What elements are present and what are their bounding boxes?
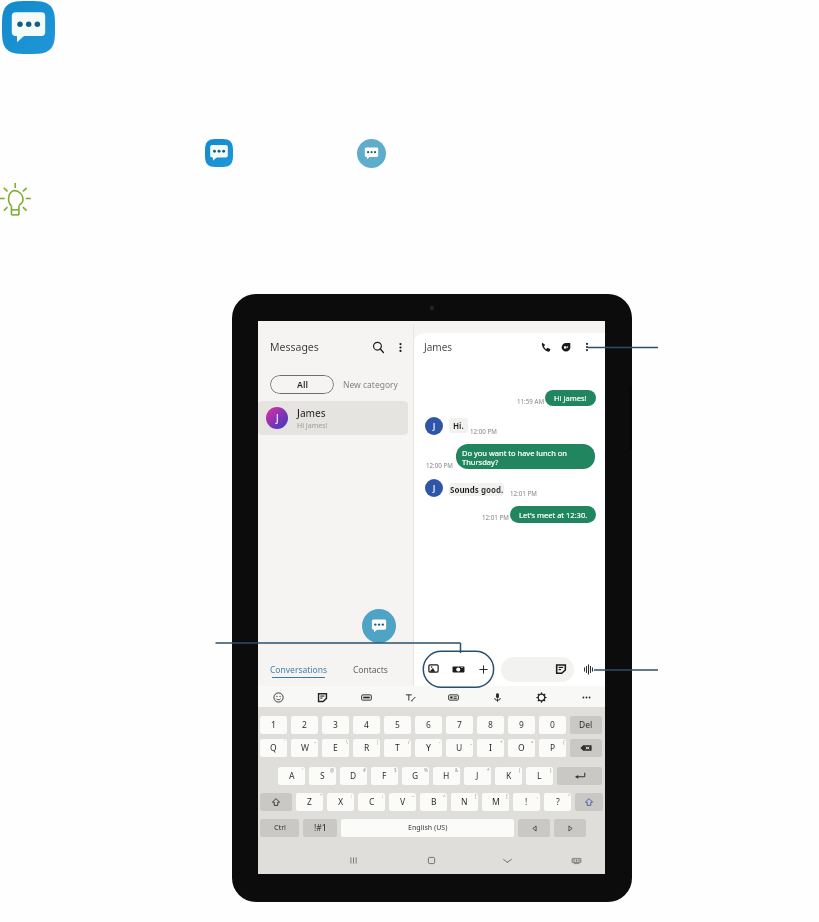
staticText: V: [400, 796, 406, 808]
button[interactable]: down: [496, 849, 518, 871]
button[interactable]: Add: [478, 664, 489, 675]
staticText: 3: [333, 719, 338, 731]
button[interactable]: !#1: [303, 819, 337, 837]
button[interactable]: More options: [581, 341, 593, 353]
button[interactable]: Contacts: [350, 664, 390, 682]
button[interactable]: J: [464, 767, 491, 785]
button[interactable]: 5: [384, 716, 411, 734]
button[interactable]: Z: [296, 793, 323, 811]
button[interactable]: 2: [291, 716, 318, 734]
button[interactable]: 3: [322, 716, 349, 734]
button[interactable]: N: [451, 793, 478, 811]
staticText: %: [424, 767, 428, 773]
button[interactable]: Voice input: [583, 664, 594, 675]
button[interactable]: Camera: [452, 663, 465, 676]
button[interactable]: M: [482, 793, 509, 811]
button[interactable]: Del: [570, 716, 602, 734]
button[interactable]: Ctrl: [260, 819, 299, 837]
button[interactable]: gif: [355, 691, 377, 703]
button[interactable]: New conversation: [362, 609, 396, 643]
button[interactable]: P: [539, 739, 566, 757]
staticText: #: [363, 767, 366, 773]
button[interactable]: 8: [477, 716, 504, 734]
button[interactable]: !: [513, 793, 540, 811]
button[interactable]: T: [384, 739, 411, 757]
staticText: Del: [579, 719, 593, 731]
button[interactable]: English (US): [341, 819, 514, 837]
button[interactable]: O: [508, 739, 535, 757]
button[interactable]: I: [477, 739, 504, 757]
button[interactable]: mic: [486, 691, 508, 703]
button[interactable]: clip: [442, 691, 464, 703]
button[interactable]: V: [389, 793, 416, 811]
button[interactable]: A: [278, 767, 305, 785]
button[interactable]: [518, 819, 550, 837]
button[interactable]: J: [258, 401, 408, 435]
staticText: $: [394, 767, 397, 773]
button[interactable]: W: [291, 739, 318, 757]
button[interactable]: Video call: [560, 341, 572, 353]
button[interactable]: recents: [342, 849, 364, 871]
button[interactable]: 9: [508, 716, 535, 734]
button[interactable]: All: [270, 375, 334, 394]
button[interactable]: sticker: [311, 691, 333, 703]
button[interactable]: 4: [353, 716, 380, 734]
staticText: _: [470, 739, 472, 745]
button[interactable]: Call: [540, 341, 552, 353]
button[interactable]: more: [575, 691, 597, 703]
staticText: Ctrl: [274, 823, 286, 833]
staticText: \: [346, 739, 348, 745]
staticText: 5: [395, 719, 400, 731]
button[interactable]: 7: [446, 716, 473, 734]
button[interactable]: emoji: [267, 691, 289, 703]
button[interactable]: H: [433, 767, 460, 785]
staticText: O: [518, 742, 525, 754]
button[interactable]: 0: [539, 716, 566, 734]
button[interactable]: [575, 793, 603, 811]
button[interactable]: U: [446, 739, 473, 757]
staticText: ]: [506, 793, 508, 799]
button[interactable]: B: [420, 793, 447, 811]
button[interactable]: F: [371, 767, 398, 785]
button[interactable]: Y: [415, 739, 442, 757]
button[interactable]: [557, 767, 602, 785]
button[interactable]: Q: [260, 739, 287, 757]
button[interactable]: Search: [372, 341, 385, 354]
button[interactable]: Stickers: [555, 663, 567, 675]
button[interactable]: kb: [565, 849, 587, 871]
button[interactable]: [570, 739, 602, 757]
button[interactable]: hand: [399, 691, 421, 703]
staticText: M: [492, 796, 500, 808]
staticText: 8: [488, 719, 493, 731]
button[interactable]: C: [358, 793, 385, 811]
button[interactable]: D: [340, 767, 367, 785]
button[interactable]: gear: [530, 691, 552, 703]
staticText: J: [433, 483, 436, 494]
button[interactable]: R: [353, 739, 380, 757]
staticText: °: [568, 793, 570, 799]
staticText: ": [320, 793, 322, 799]
button[interactable]: Gallery: [428, 663, 439, 674]
button[interactable]: K: [495, 767, 522, 785]
button[interactable]: E: [322, 739, 349, 757]
button[interactable]: ?: [544, 793, 571, 811]
button[interactable]: S: [309, 767, 336, 785]
button[interactable]: L: [526, 767, 553, 785]
staticText: !: [525, 796, 528, 808]
button[interactable]: [260, 793, 292, 811]
button[interactable]: G: [402, 767, 429, 785]
staticText: ~: [412, 793, 415, 799]
staticText: 7: [457, 719, 462, 731]
staticText: =: [531, 739, 534, 745]
button[interactable]: 1: [260, 716, 287, 734]
button[interactable]: home: [420, 849, 442, 871]
button[interactable]: 6: [415, 716, 442, 734]
button[interactable]: X: [327, 793, 354, 811]
staticText: James: [297, 406, 326, 420]
staticText: 6: [426, 719, 431, 731]
button[interactable]: More options: [394, 341, 407, 354]
button[interactable]: [554, 819, 586, 837]
button[interactable]: Conversations: [269, 664, 328, 682]
staticText: {: [563, 739, 565, 745]
button[interactable]: [501, 657, 574, 682]
